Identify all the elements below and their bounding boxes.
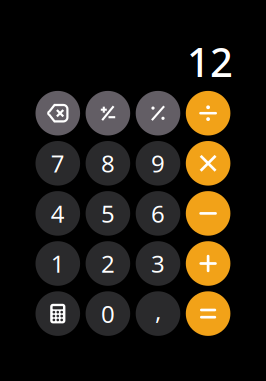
button[interactable]: Tip calculator <box>35 291 80 336</box>
button[interactable]: 0 <box>86 291 130 336</box>
staticText: 5 <box>101 197 115 229</box>
staticText: 12 <box>187 35 233 88</box>
button[interactable]: Percent <box>136 91 180 135</box>
button[interactable]: Multiply <box>186 141 230 186</box>
staticText: 6 <box>151 197 165 229</box>
button[interactable]: 8 <box>86 141 130 186</box>
staticText: 2 <box>101 248 115 279</box>
button[interactable]: Delete <box>35 91 80 135</box>
button[interactable]: 5 <box>86 191 130 236</box>
button[interactable]: Decimal separator <box>136 291 180 336</box>
button[interactable]: 9 <box>136 141 180 186</box>
staticText: 3 <box>151 248 165 279</box>
button[interactable]: 2 <box>86 241 130 286</box>
button[interactable]: Minus <box>186 191 230 236</box>
staticText: 8 <box>101 147 115 179</box>
button[interactable]: 7 <box>35 141 80 186</box>
staticText: , <box>155 295 161 327</box>
staticText: 0 <box>101 298 115 330</box>
button[interactable]: Plus minus <box>86 91 130 135</box>
button[interactable]: Equals <box>186 291 230 336</box>
staticText: 1 <box>51 248 65 279</box>
button[interactable]: 1 <box>35 241 80 286</box>
staticText: 9 <box>151 147 165 179</box>
button[interactable]: 4 <box>35 191 80 236</box>
button[interactable]: 6 <box>136 191 180 236</box>
button[interactable]: Plus <box>186 241 230 286</box>
staticText: 7 <box>51 147 65 179</box>
button[interactable]: Divide <box>186 91 230 135</box>
staticText: 4 <box>51 197 65 229</box>
button[interactable]: 3 <box>136 241 180 286</box>
